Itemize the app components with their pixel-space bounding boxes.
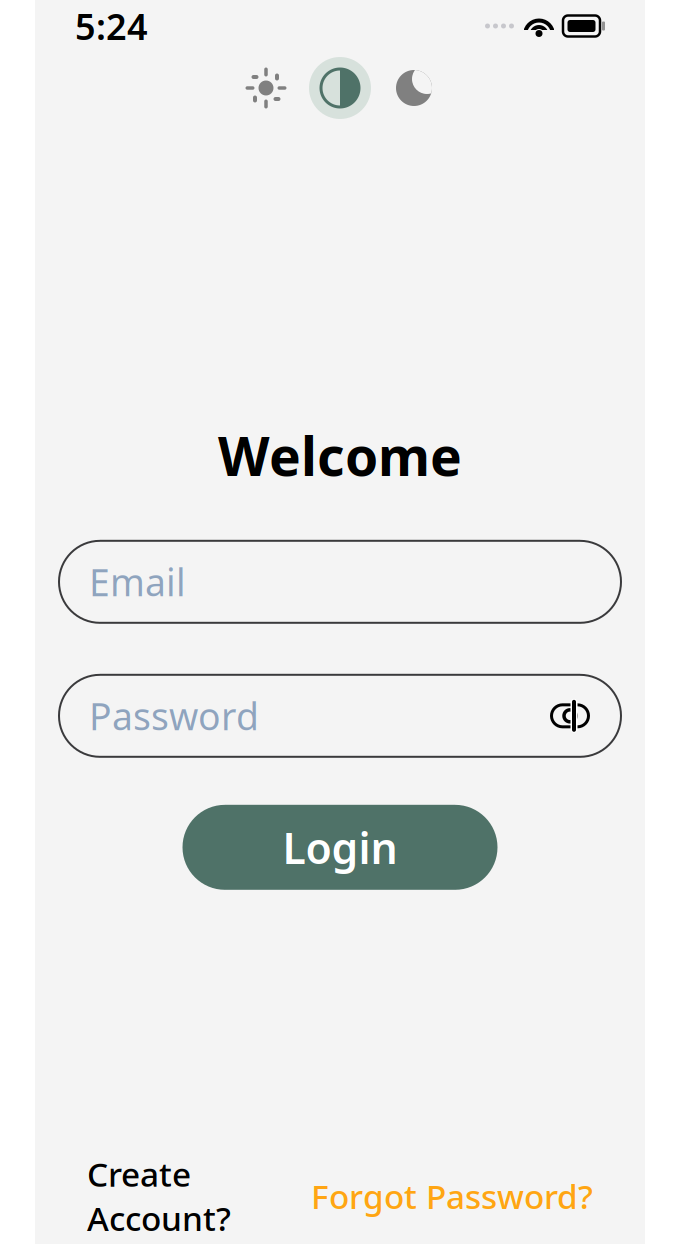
staticText: Create Account? (87, 1152, 231, 1240)
button[interactable]: Create Account? (87, 1152, 231, 1240)
staticText: Forgot Password? (311, 1174, 593, 1218)
staticText: 5:24 (75, 2, 148, 50)
staticText: Password (89, 691, 259, 741)
staticText: Login (282, 819, 397, 876)
button[interactable]: Dark appearance (383, 57, 445, 119)
button[interactable]: Automatic appearance (309, 57, 371, 119)
button[interactable]: Password (59, 675, 621, 757)
button[interactable]: Light appearance (235, 57, 297, 119)
staticText: Email (89, 557, 186, 607)
button[interactable]: Forgot Password? (311, 1174, 593, 1218)
button[interactable]: Email (59, 541, 621, 623)
staticText: Welcome (218, 420, 462, 491)
button[interactable]: Login (182, 805, 497, 890)
